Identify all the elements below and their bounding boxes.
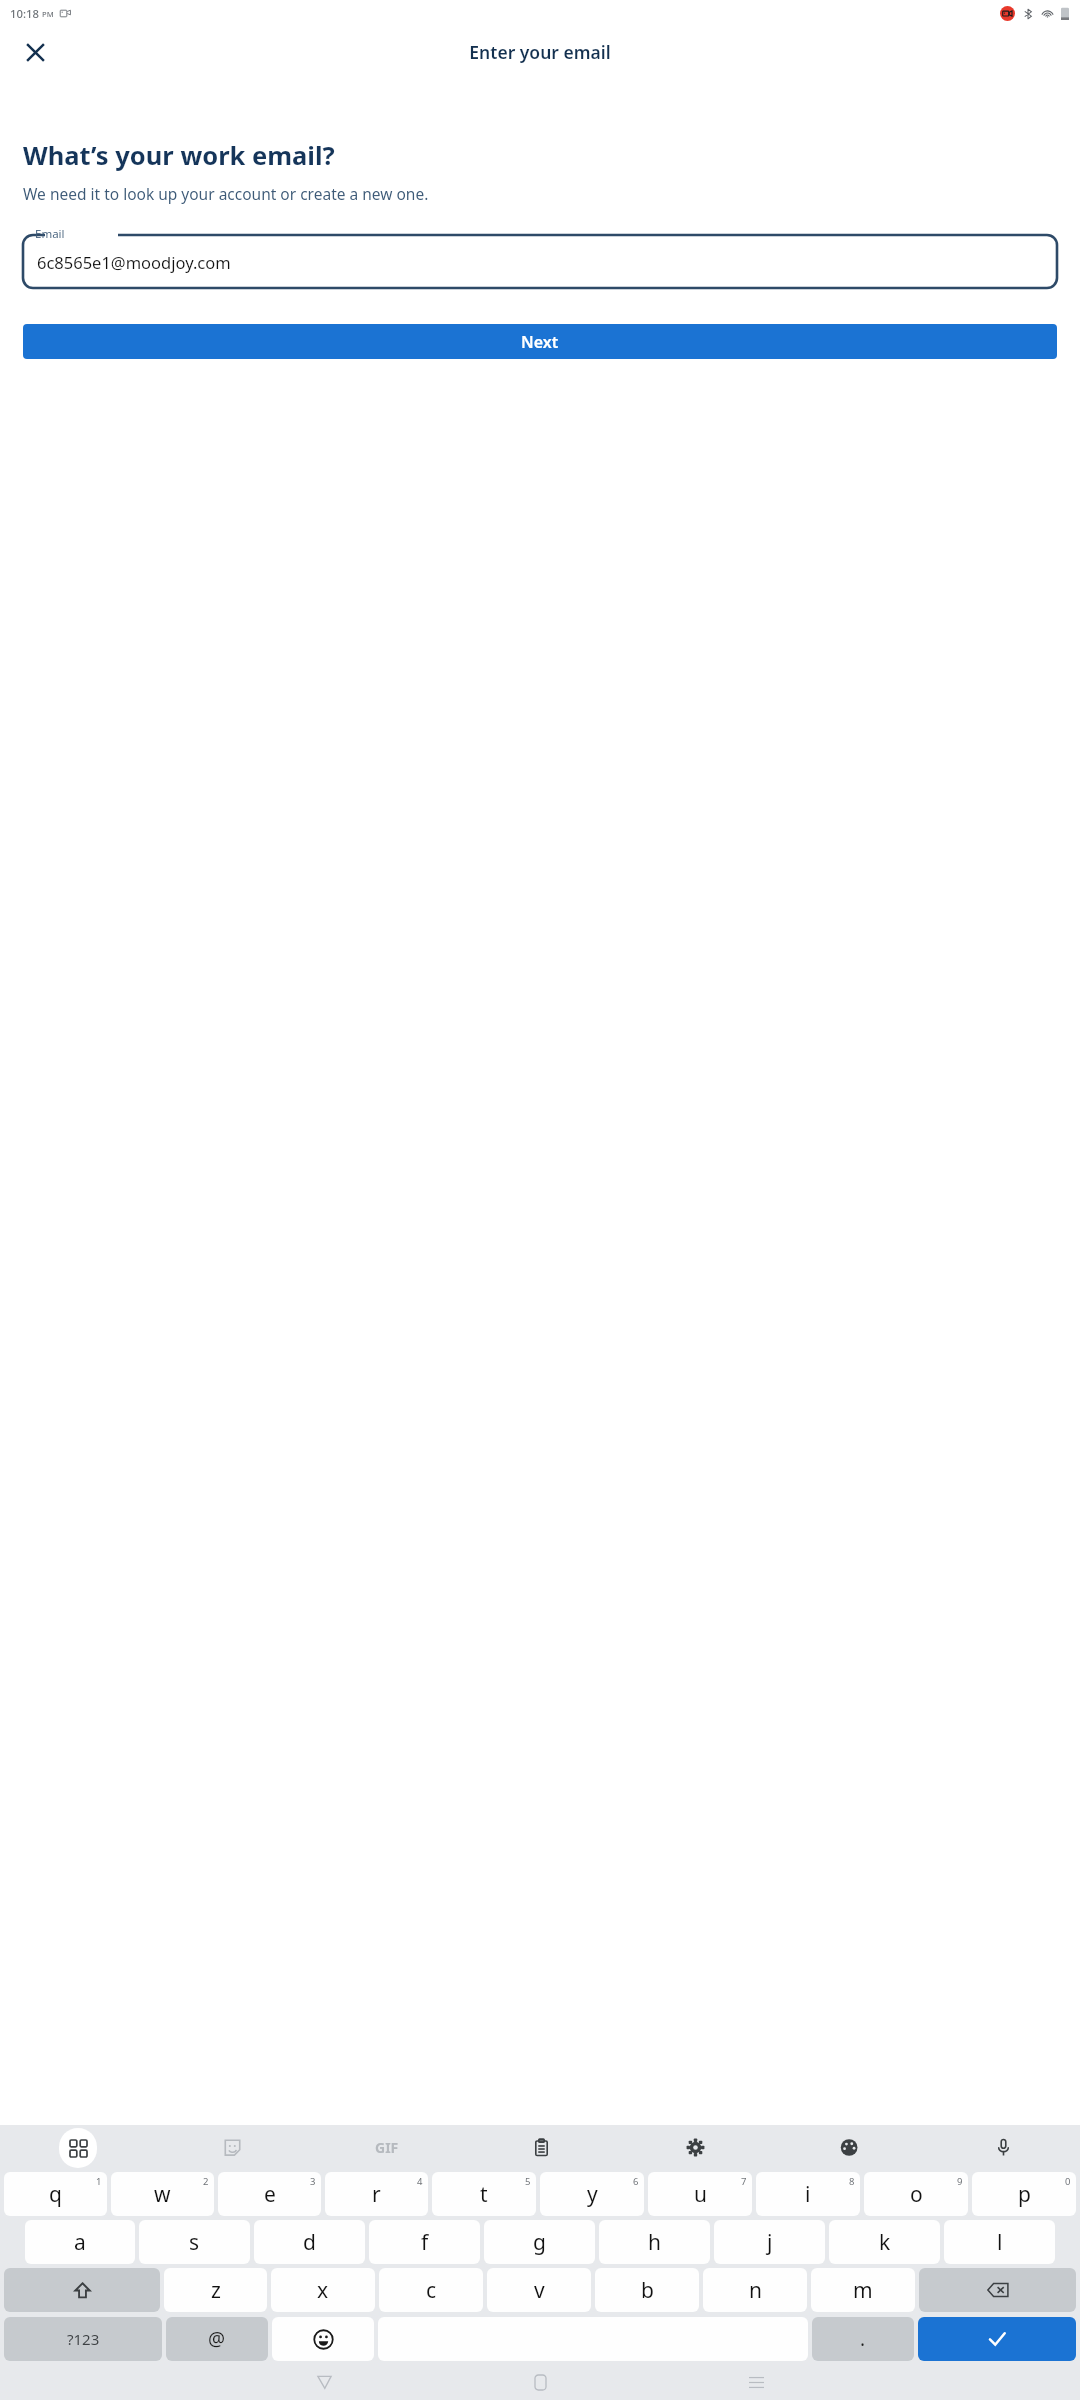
- staticText: We need it to look up your account or cr…: [23, 183, 429, 204]
- staticText: Next: [521, 331, 559, 353]
- staticText: w: [154, 2180, 171, 2209]
- button[interactable]: x: [271, 2268, 375, 2312]
- button[interactable]: j: [714, 2220, 825, 2264]
- staticText: m: [853, 2276, 873, 2305]
- staticText: e: [264, 2180, 276, 2209]
- staticText: u: [694, 2180, 707, 2209]
- staticText: t: [480, 2180, 488, 2209]
- button[interactable]: n: [703, 2268, 807, 2312]
- button[interactable]: f: [369, 2220, 480, 2264]
- staticText: @: [208, 2326, 226, 2352]
- button[interactable]: Close: [14, 31, 56, 73]
- button[interactable]: Settings: [618, 2125, 772, 2170]
- staticText: l: [997, 2228, 1003, 2257]
- button[interactable]: s: [139, 2220, 250, 2264]
- staticText: z: [211, 2276, 221, 2305]
- button[interactable]: p: [972, 2172, 1076, 2216]
- staticText: .: [860, 2326, 866, 2352]
- staticText: 9: [957, 2175, 963, 2188]
- button[interactable]: ?123: [4, 2317, 162, 2361]
- button[interactable]: .: [812, 2317, 914, 2361]
- staticText: n: [749, 2276, 762, 2305]
- button[interactable]: d: [254, 2220, 365, 2264]
- button[interactable]: y: [540, 2172, 644, 2216]
- staticText: y: [587, 2180, 598, 2209]
- staticText: GIF: [375, 2138, 399, 2157]
- button[interactable]: Recents: [648, 2364, 864, 2400]
- button[interactable]: Email: [23, 230, 1057, 288]
- button[interactable]: Themes: [772, 2125, 926, 2170]
- button[interactable]: Next: [23, 324, 1057, 359]
- staticText: PM: [42, 9, 54, 19]
- staticText: 0: [1065, 2175, 1071, 2188]
- staticText: k: [879, 2228, 891, 2257]
- button[interactable]: Backspace: [919, 2268, 1076, 2312]
- button[interactable]: GIF: [310, 2125, 464, 2170]
- button[interactable]: t: [432, 2172, 536, 2216]
- button[interactable]: i: [756, 2172, 860, 2216]
- button[interactable]: z: [164, 2268, 267, 2312]
- button[interactable]: Emoji: [272, 2317, 374, 2361]
- staticText: d: [303, 2228, 316, 2257]
- staticText: 3: [310, 2175, 316, 2188]
- staticText: Enter your email: [469, 40, 611, 64]
- staticText: 5: [525, 2175, 531, 2188]
- button[interactable]: e: [218, 2172, 321, 2216]
- staticText: Email: [35, 226, 65, 242]
- button[interactable]: r: [325, 2172, 428, 2216]
- staticText: 2: [203, 2175, 209, 2188]
- staticText: g: [533, 2228, 546, 2257]
- staticText: j: [767, 2228, 773, 2257]
- staticText: v: [534, 2276, 545, 2305]
- staticText: ?123: [67, 2329, 100, 2349]
- button[interactable]: v: [487, 2268, 591, 2312]
- button[interactable]: b: [595, 2268, 699, 2312]
- button[interactable]: q: [4, 2172, 107, 2216]
- staticText: 8: [849, 2175, 855, 2188]
- staticText: s: [189, 2228, 200, 2257]
- staticText: q: [49, 2180, 62, 2209]
- button[interactable]: Back: [216, 2364, 432, 2400]
- button[interactable]: Enter: [918, 2317, 1076, 2361]
- staticText: b: [641, 2276, 654, 2305]
- button[interactable]: Home: [432, 2364, 648, 2400]
- button[interactable]: a: [25, 2220, 135, 2264]
- button[interactable]: m: [811, 2268, 915, 2312]
- button[interactable]: @: [166, 2317, 268, 2361]
- button[interactable]: l: [944, 2220, 1055, 2264]
- staticText: 6: [633, 2175, 639, 2188]
- button[interactable]: Voice input: [926, 2125, 1080, 2170]
- staticText: 4: [417, 2175, 423, 2188]
- button[interactable]: c: [379, 2268, 483, 2312]
- staticText: x: [317, 2276, 329, 2305]
- staticText: h: [648, 2228, 661, 2257]
- staticText: c: [426, 2276, 437, 2305]
- staticText: i: [805, 2180, 811, 2209]
- button[interactable]: k: [829, 2220, 940, 2264]
- button[interactable]: Toolbar: [0, 2125, 155, 2170]
- staticText: r: [372, 2180, 381, 2209]
- button[interactable]: Clipboard: [464, 2125, 618, 2170]
- button[interactable]: Stickers: [155, 2125, 310, 2170]
- button[interactable]: o: [864, 2172, 968, 2216]
- staticText: o: [910, 2180, 923, 2209]
- staticText: 10:18: [10, 6, 39, 21]
- staticText: 1: [96, 2175, 102, 2188]
- button[interactable]: g: [484, 2220, 595, 2264]
- staticText: a: [74, 2228, 86, 2257]
- staticText: 7: [741, 2175, 747, 2188]
- staticText: f: [421, 2228, 429, 2257]
- button[interactable]: u: [648, 2172, 752, 2216]
- staticText: What’s your work email?: [23, 138, 335, 173]
- staticText: 6c8565e1@moodjoy.com: [37, 251, 231, 273]
- button[interactable]: w: [111, 2172, 214, 2216]
- staticText: p: [1018, 2180, 1031, 2209]
- button[interactable]: Shift: [4, 2268, 160, 2312]
- button[interactable]: h: [599, 2220, 710, 2264]
